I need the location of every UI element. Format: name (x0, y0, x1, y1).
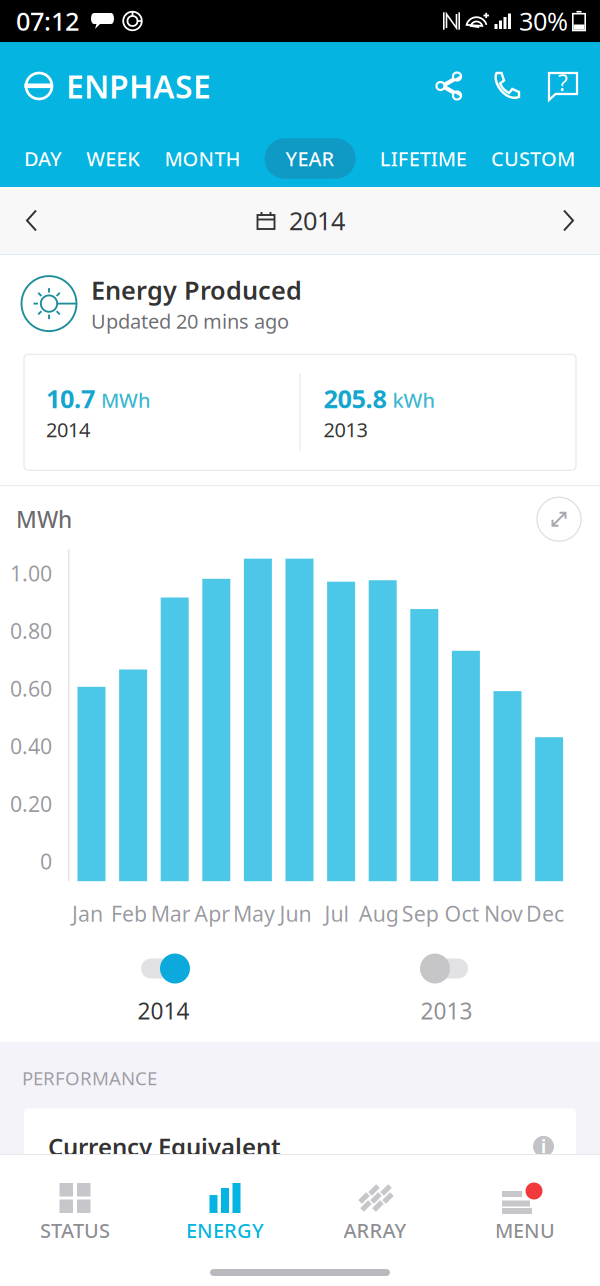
staticText: 0.40 (10, 732, 52, 760)
staticText: i (541, 1135, 546, 1158)
staticText: ? (558, 67, 568, 97)
button[interactable]: CUSTOM (491, 138, 575, 179)
button[interactable]: Help (534, 62, 580, 109)
button[interactable]: 2014 (137, 953, 190, 1026)
staticText: DAY (24, 145, 62, 172)
staticText: 2014 (137, 995, 189, 1026)
button[interactable]: Share (420, 65, 478, 107)
button[interactable]: Next year (544, 193, 592, 247)
staticText: Jun (279, 899, 311, 927)
staticText: kWh (392, 387, 435, 413)
staticText: May (233, 899, 275, 927)
staticText: CUSTOM (491, 145, 575, 172)
staticText: Oct (444, 899, 479, 927)
staticText: WEEK (86, 145, 140, 172)
button[interactable]: MONTH (164, 138, 240, 179)
staticText: ARRAY (343, 1217, 406, 1244)
button[interactable]: LIFETIME (380, 138, 467, 179)
staticText: Aug (359, 899, 399, 927)
staticText: Nov (484, 899, 523, 927)
staticText: 07:12 (16, 4, 79, 38)
button[interactable]: MENU (450, 1155, 600, 1252)
button[interactable]: ENERGY (150, 1155, 300, 1252)
button[interactable]: Expand chart (536, 496, 582, 542)
staticText: ENERGY (186, 1217, 264, 1244)
staticText: Feb (111, 899, 147, 927)
button[interactable]: Previous year (8, 193, 56, 247)
staticText: LIFETIME (380, 145, 467, 172)
staticText: Jul (325, 899, 350, 927)
staticText: 1.00 (10, 559, 52, 587)
staticText: 10.7 (46, 382, 95, 415)
button[interactable]: Currency Equivalent (24, 1108, 576, 1188)
staticText: 0.80 (10, 617, 52, 645)
staticText: Currency Equivalent (48, 1130, 281, 1162)
staticText: MONTH (164, 145, 240, 172)
staticText: 2014 (289, 204, 345, 237)
staticText: 2014 (46, 416, 90, 443)
staticText: PERFORMANCE (22, 1066, 157, 1090)
button[interactable]: WEEK (86, 138, 140, 179)
staticText: 0 (40, 847, 52, 875)
staticText: 30% (519, 4, 568, 38)
staticText: Updated 20 mins ago (91, 308, 289, 334)
staticText: 2013 (323, 416, 367, 443)
staticText: MWh (16, 504, 72, 534)
button[interactable]: STATUS (0, 1155, 150, 1252)
staticText: STATUS (40, 1217, 110, 1244)
staticText: MENU (495, 1217, 555, 1244)
staticText: Mar (151, 899, 191, 927)
staticText: 0.60 (10, 674, 52, 702)
staticText: ENPHASE (66, 65, 211, 107)
staticText: Sep (402, 899, 439, 927)
button[interactable]: YEAR (265, 138, 356, 179)
staticText: 2013 (420, 995, 472, 1026)
button[interactable]: Call support (478, 65, 534, 107)
staticText: 0.20 (10, 789, 52, 818)
button[interactable]: 2013 (420, 953, 473, 1026)
staticText: Energy Produced (91, 273, 302, 307)
staticText: MWh (101, 387, 151, 413)
staticText: Apr (194, 899, 230, 927)
staticText: Dec (526, 899, 564, 927)
button[interactable]: DAY (24, 138, 62, 179)
staticText: 205.8 (323, 382, 386, 415)
button[interactable]: ARRAY (300, 1155, 450, 1252)
staticText: Jan (72, 899, 103, 927)
staticText: YEAR (286, 145, 335, 172)
